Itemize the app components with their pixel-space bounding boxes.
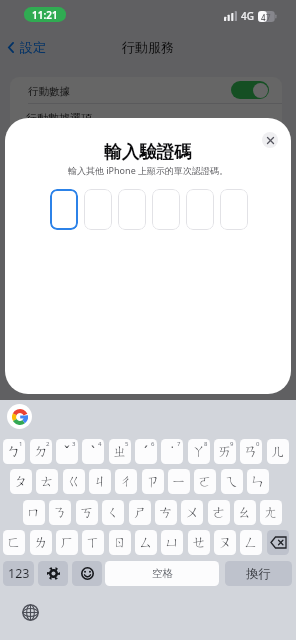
- button[interactable]: ˋ: [82, 439, 104, 464]
- button[interactable]: [118, 189, 146, 230]
- staticText: 設定: [20, 39, 46, 55]
- button[interactable]: ㄗ: [142, 469, 164, 494]
- staticText: ㄔ: [119, 473, 134, 491]
- button[interactable]: ˙: [161, 439, 183, 464]
- button[interactable]: ˇ: [56, 439, 78, 464]
- staticText: ㄛ: [198, 473, 213, 491]
- staticText: 123: [8, 565, 30, 582]
- button[interactable]: ㄦ: [267, 439, 289, 464]
- button[interactable]: ㄌ: [30, 530, 52, 555]
- button[interactable]: ㄍ: [63, 469, 85, 494]
- button[interactable]: ㄊ: [36, 469, 58, 494]
- button[interactable]: 123: [3, 561, 34, 586]
- staticText: 0: [256, 440, 260, 448]
- button[interactable]: ㄝ: [188, 530, 210, 555]
- button[interactable]: ㄔ: [115, 469, 137, 494]
- button[interactable]: ㄟ: [221, 469, 243, 494]
- button[interactable]: ㄖ: [109, 530, 131, 555]
- button[interactable]: ㄑ: [102, 500, 124, 525]
- button[interactable]: ㄈ: [3, 530, 25, 555]
- button[interactable]: ㄇ: [23, 500, 45, 525]
- button[interactable]: ㄘ: [155, 500, 177, 525]
- button[interactable]: 設定: [8, 39, 46, 55]
- staticText: ㄊ: [40, 473, 55, 491]
- staticText: ㄖ: [113, 534, 128, 552]
- staticText: 換行: [246, 566, 271, 582]
- button[interactable]: Google: [7, 404, 32, 429]
- button[interactable]: ㄧ: [168, 469, 190, 494]
- staticText: ㄏ: [60, 534, 75, 552]
- button[interactable]: Emoji: [72, 561, 102, 586]
- button[interactable]: ㄕ: [129, 500, 151, 525]
- staticText: ㄨ: [185, 504, 200, 522]
- button[interactable]: ㄣ: [247, 469, 269, 494]
- staticText: ㄓ: [113, 443, 128, 461]
- staticText: ㄣ: [251, 473, 266, 491]
- button[interactable]: ㄐ: [89, 469, 111, 494]
- button[interactable]: [152, 189, 180, 230]
- button[interactable]: Change input language: [22, 604, 39, 621]
- button[interactable]: ㄠ: [234, 500, 256, 525]
- button[interactable]: 換行: [225, 561, 292, 586]
- button[interactable]: ㄞ: [214, 439, 236, 464]
- staticText: ㄒ: [86, 534, 101, 552]
- button[interactable]: ㄨ: [181, 500, 203, 525]
- button[interactable]: ㄢ: [240, 439, 262, 464]
- button[interactable]: ㄋ: [49, 500, 71, 525]
- button[interactable]: ㄏ: [56, 530, 78, 555]
- staticText: ㄤ: [264, 504, 279, 522]
- button[interactable]: Keyboard settings: [38, 561, 68, 586]
- staticText: 5: [125, 440, 129, 448]
- staticText: ㄥ: [244, 534, 259, 552]
- staticText: 輸入驗證碼: [5, 141, 291, 163]
- button[interactable]: ㄜ: [208, 500, 230, 525]
- button[interactable]: 空格: [105, 561, 219, 586]
- staticText: 6: [151, 440, 155, 448]
- button[interactable]: [84, 189, 112, 230]
- button[interactable]: ㄤ: [260, 500, 282, 525]
- staticText: ˋ: [91, 442, 95, 461]
- staticText: ㄞ: [218, 443, 233, 461]
- button[interactable]: ˊ: [135, 439, 157, 464]
- button[interactable]: ㄅ: [3, 439, 25, 464]
- staticText: ㄋ: [53, 504, 68, 522]
- staticText: ㄦ: [271, 443, 286, 461]
- button[interactable]: [186, 189, 214, 230]
- staticText: ㄌ: [34, 534, 49, 552]
- staticText: ㄗ: [146, 473, 161, 491]
- staticText: 1: [19, 440, 23, 448]
- button[interactable]: ㄓ: [109, 439, 131, 464]
- button[interactable]: ㄆ: [10, 469, 32, 494]
- staticText: 輸入其他 iPhone 上顯示的單次認證碼。: [5, 164, 291, 176]
- button[interactable]: ㄒ: [82, 530, 104, 555]
- button[interactable]: Close: [262, 132, 278, 148]
- staticText: 行動數據選項: [26, 111, 92, 125]
- button[interactable]: [220, 189, 248, 230]
- staticText: ㄧ: [172, 473, 187, 491]
- staticText: ㄜ: [212, 504, 227, 522]
- button[interactable]: Mobile data: [231, 81, 269, 99]
- staticText: ㄚ: [192, 443, 207, 461]
- staticText: ㄆ: [14, 473, 29, 491]
- button[interactable]: [50, 189, 78, 230]
- staticText: ㄉ: [34, 443, 49, 461]
- staticText: 行動數據: [28, 85, 70, 98]
- staticText: ㄙ: [139, 534, 154, 552]
- button[interactable]: ㄉ: [30, 439, 52, 464]
- staticText: 2: [46, 440, 50, 448]
- button[interactable]: ㄥ: [240, 530, 262, 555]
- button[interactable]: Backspace: [267, 530, 289, 555]
- staticText: ㄘ: [159, 504, 174, 522]
- button[interactable]: ㄡ: [214, 530, 236, 555]
- staticText: ˊ: [144, 442, 148, 461]
- button[interactable]: ㄎ: [76, 500, 98, 525]
- button[interactable]: ㄩ: [161, 530, 183, 555]
- staticText: 7: [266, 12, 271, 23]
- button[interactable]: ㄚ: [188, 439, 210, 464]
- staticText: ˇ: [64, 442, 70, 461]
- staticText: 8: [204, 440, 208, 448]
- button[interactable]: ㄛ: [194, 469, 216, 494]
- staticText: 4: [98, 440, 102, 448]
- staticText: ㄇ: [27, 504, 42, 522]
- button[interactable]: ㄙ: [135, 530, 157, 555]
